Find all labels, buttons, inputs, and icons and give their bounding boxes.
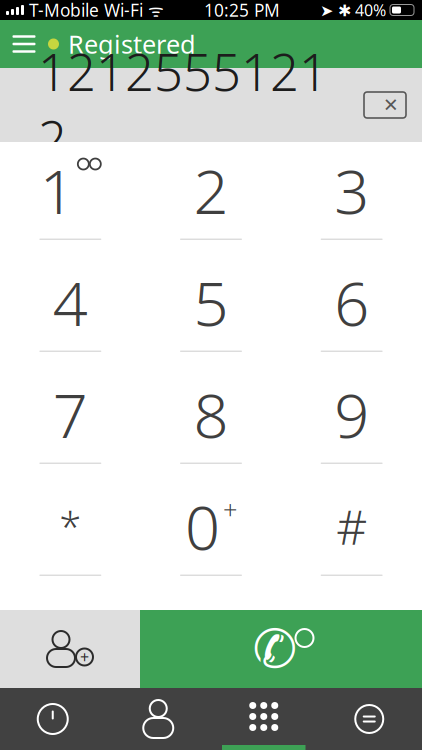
staticText: 12125551212 — [38, 38, 328, 172]
staticText: ➤ ✱ 40% — [320, 0, 386, 21]
staticText: + — [80, 646, 89, 668]
button[interactable]: 5 — [141, 254, 281, 366]
button[interactable]: 1 — [0, 142, 141, 254]
staticText: 0 — [185, 485, 220, 567]
button[interactable]: 3 — [281, 142, 422, 254]
button[interactable]: Call — [140, 610, 422, 688]
button[interactable]: Delete — [348, 68, 422, 142]
staticText: 3 — [334, 149, 369, 231]
button[interactable]: 8 — [141, 366, 281, 478]
staticText: # — [336, 494, 367, 558]
button[interactable]: Contacts — [105, 688, 211, 750]
staticText: 1 — [40, 149, 75, 231]
button[interactable]: 6 — [281, 254, 422, 366]
staticText: * — [59, 500, 81, 553]
button[interactable]: 7 — [0, 366, 141, 478]
staticText: 7 — [53, 373, 88, 455]
button[interactable]: 2 — [141, 142, 281, 254]
staticText: ✕ — [383, 94, 399, 116]
staticText: 8 — [193, 373, 228, 455]
button[interactable]: * — [0, 478, 141, 590]
staticText: 5 — [193, 261, 228, 343]
button[interactable]: # — [281, 478, 422, 590]
button[interactable]: Recents — [0, 688, 105, 750]
staticText: ✆ — [252, 619, 297, 679]
button[interactable]: Messages — [316, 688, 422, 750]
staticText: 9 — [334, 373, 369, 455]
staticText: T-Mobile Wi-Fi ᯤ — [24, 0, 164, 21]
button[interactable]: Add contact — [0, 610, 140, 688]
button[interactable]: Menu — [0, 20, 48, 68]
staticText: + — [223, 492, 237, 526]
button[interactable]: 9 — [281, 366, 422, 478]
staticText: 10:25 PM — [204, 0, 280, 21]
button[interactable]: 0 — [141, 478, 281, 590]
staticText: 6 — [334, 261, 369, 343]
staticText: 4 — [53, 261, 88, 343]
button[interactable]: Keypad — [211, 688, 316, 750]
staticText: 2 — [193, 149, 228, 231]
button[interactable]: 4 — [0, 254, 141, 366]
staticText: Registered — [68, 27, 196, 61]
